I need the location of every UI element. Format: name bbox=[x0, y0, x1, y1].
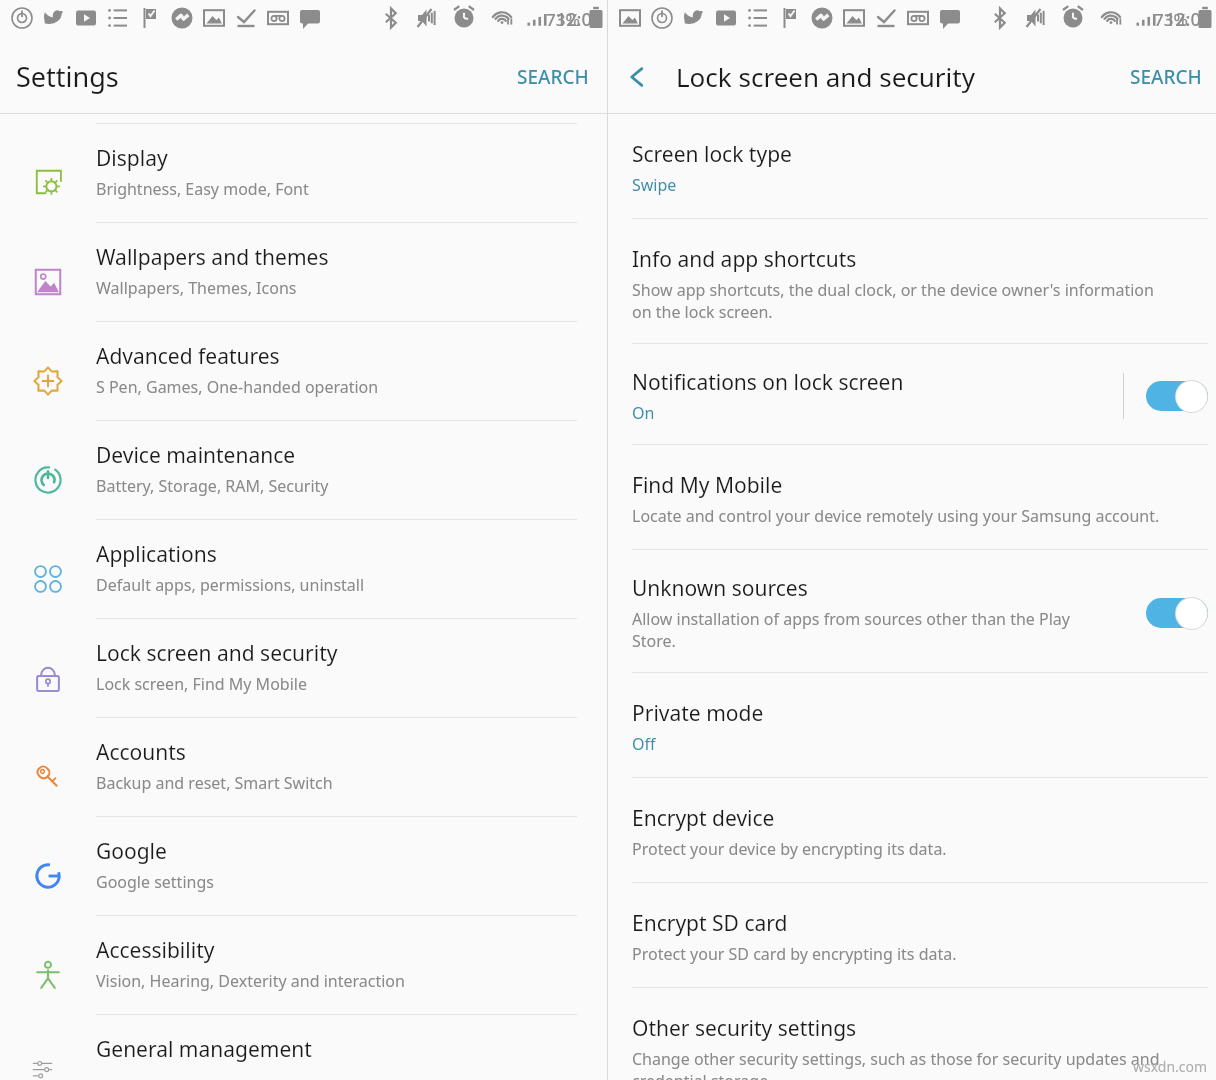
staticText: Accounts bbox=[96, 738, 186, 767]
staticText: 73% bbox=[546, 8, 580, 31]
button[interactable]: SEARCH bbox=[499, 54, 607, 100]
button[interactable]: Wallpapers and themes bbox=[0, 223, 607, 322]
button[interactable]: Back bbox=[608, 58, 660, 96]
button[interactable]: Encrypt device bbox=[608, 778, 1216, 883]
staticText: S Pen, Games, One-handed operation bbox=[96, 376, 379, 398]
staticText: Settings bbox=[16, 58, 119, 95]
staticText: Display bbox=[96, 144, 168, 173]
staticText: Screen lock type bbox=[632, 140, 792, 169]
staticText: Allow installation of apps from sources … bbox=[632, 608, 1070, 652]
button[interactable]: Screen lock type bbox=[608, 114, 1216, 219]
staticText: Vision, Hearing, Dexterity and interacti… bbox=[96, 970, 405, 992]
button[interactable]: Info and app shortcuts bbox=[608, 219, 1216, 344]
button[interactable]: Other security settings bbox=[608, 988, 1216, 1080]
staticText: On bbox=[632, 402, 655, 424]
staticText: Private mode bbox=[632, 699, 764, 728]
staticText: Backup and reset, Smart Switch bbox=[96, 772, 333, 794]
button[interactable]: Device maintenance bbox=[0, 421, 607, 520]
staticText: Encrypt device bbox=[632, 804, 775, 833]
staticText: Swipe bbox=[632, 174, 677, 196]
staticText: Protect your SD card by encrypting its d… bbox=[632, 943, 957, 965]
button[interactable]: Google bbox=[0, 817, 607, 916]
button[interactable]: Find My Mobile bbox=[608, 445, 1216, 550]
button[interactable]: Advanced features bbox=[0, 322, 607, 421]
staticText: Encrypt SD card bbox=[632, 909, 788, 938]
button[interactable]: Notifications on lock screen bbox=[608, 344, 1216, 445]
staticText: Wallpapers, Themes, Icons bbox=[96, 277, 297, 299]
staticText: Device maintenance bbox=[96, 441, 296, 470]
staticText: Accessibility bbox=[96, 936, 215, 965]
staticText: Google settings bbox=[96, 871, 214, 893]
staticText: SEARCH bbox=[1130, 64, 1202, 90]
staticText: Off bbox=[632, 733, 656, 755]
button[interactable]: Toggle bbox=[1146, 379, 1208, 413]
button[interactable]: Unknown sources bbox=[608, 550, 1216, 673]
staticText: Brightness, Easy mode, Font bbox=[96, 178, 309, 200]
staticText: Locate and control your device remotely … bbox=[632, 505, 1160, 527]
staticText: Unknown sources bbox=[632, 574, 808, 603]
button[interactable]: SEARCH bbox=[1116, 54, 1216, 100]
staticText: SEARCH bbox=[517, 64, 589, 90]
staticText: Show app shortcuts, the dual clock, or t… bbox=[632, 279, 1154, 323]
staticText: Applications bbox=[96, 540, 217, 569]
staticText: 73% bbox=[1154, 8, 1188, 31]
staticText: 12:05 bbox=[1165, 7, 1212, 32]
staticText: Lock screen and security bbox=[676, 59, 975, 94]
staticText: Notifications on lock screen bbox=[632, 368, 904, 397]
button[interactable]: Display bbox=[0, 124, 607, 223]
staticText: Lock screen, Find My Mobile bbox=[96, 673, 307, 695]
button[interactable]: Accounts bbox=[0, 718, 607, 817]
button[interactable]: Private mode bbox=[608, 673, 1216, 778]
staticText: 12:05 bbox=[556, 7, 603, 32]
staticText: Find My Mobile bbox=[632, 471, 783, 500]
button[interactable]: Encrypt SD card bbox=[608, 883, 1216, 988]
staticText: Wallpapers and themes bbox=[96, 243, 329, 272]
staticText: Protect your device by encrypting its da… bbox=[632, 838, 947, 860]
staticText: Other security settings bbox=[632, 1014, 857, 1043]
staticText: Change other security settings, such as … bbox=[632, 1048, 1160, 1080]
button[interactable]: Lock screen and security bbox=[0, 619, 607, 718]
staticText: Battery, Storage, RAM, Security bbox=[96, 475, 329, 497]
button[interactable]: Applications bbox=[0, 520, 607, 619]
staticText: wsxdn.com bbox=[1133, 1057, 1208, 1076]
staticText: Google bbox=[96, 837, 167, 866]
staticText: Lock screen and security bbox=[96, 639, 338, 668]
staticText: Default apps, permissions, uninstall bbox=[96, 574, 365, 596]
button[interactable]: Accessibility bbox=[0, 916, 607, 1015]
staticText: General management bbox=[96, 1035, 312, 1064]
staticText: Advanced features bbox=[96, 342, 280, 371]
button[interactable]: Toggle bbox=[1146, 596, 1208, 630]
staticText: Info and app shortcuts bbox=[632, 245, 857, 274]
